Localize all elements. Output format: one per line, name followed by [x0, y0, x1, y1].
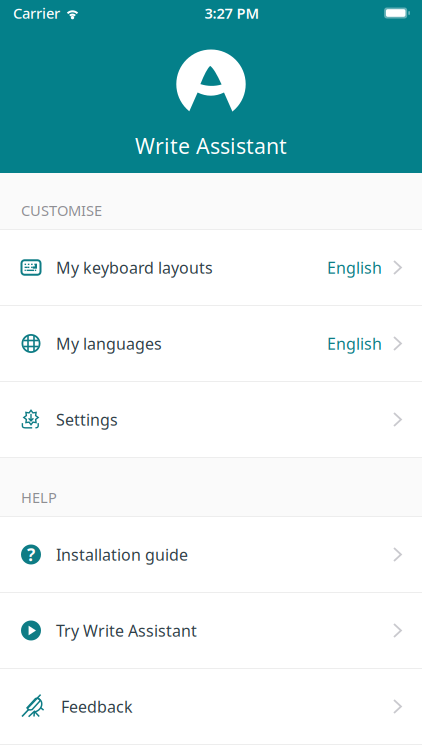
staticText: Settings — [56, 409, 118, 430]
staticText: Write Assistant — [135, 131, 287, 160]
staticText: 3:27 PM — [204, 3, 259, 23]
button[interactable]: Settings — [0, 382, 422, 458]
button[interactable]: Feedback — [0, 669, 422, 745]
staticText: ? — [27, 543, 35, 566]
button[interactable]: ? — [0, 517, 422, 593]
staticText: English — [327, 257, 382, 278]
staticText: Installation guide — [56, 544, 188, 565]
staticText: Feedback — [61, 696, 133, 717]
button[interactable]: My keyboard layouts — [0, 230, 422, 306]
staticText: English — [327, 333, 382, 354]
staticText: HELP — [21, 487, 57, 507]
button[interactable]: Try Write Assistant — [0, 593, 422, 669]
staticText: My languages — [56, 333, 162, 354]
staticText: Try Write Assistant — [56, 620, 197, 641]
staticText: CUSTOMISE — [21, 200, 102, 220]
button[interactable]: My languages — [0, 306, 422, 382]
staticText: My keyboard layouts — [56, 257, 213, 278]
staticText: Carrier — [13, 3, 60, 23]
